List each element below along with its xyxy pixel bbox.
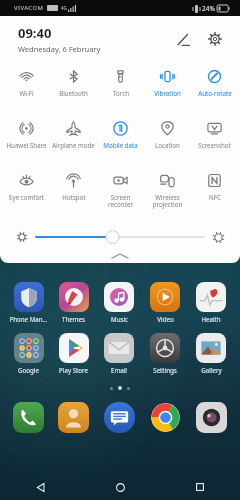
button[interactable]: Wi-Fi	[2, 64, 50, 116]
button[interactable]: Phone Man…	[6, 282, 51, 323]
staticText: 24%	[202, 4, 215, 13]
button[interactable]: Vibration	[144, 64, 191, 116]
staticText: VIVACOM	[14, 4, 44, 12]
staticText: Themes	[62, 315, 85, 323]
button[interactable]: Auto-rotate	[191, 64, 238, 116]
button[interactable]: Mobile data	[97, 116, 144, 168]
staticText: 09:40	[18, 24, 52, 42]
staticText: Video	[157, 315, 174, 323]
staticText: Email	[111, 366, 127, 374]
button[interactable]: chrome	[142, 402, 188, 433]
staticText: Bluetooth	[59, 89, 88, 97]
button[interactable]: Home	[80, 474, 160, 500]
button[interactable]: NFC	[191, 168, 238, 220]
staticText: Huawei Share	[6, 141, 47, 149]
button[interactable]: Huawei Share	[2, 116, 50, 168]
staticText: Settings	[153, 366, 177, 374]
staticText: Airplane mode	[52, 141, 95, 149]
staticText: Torch	[113, 89, 129, 97]
button[interactable]: Raise brightness	[210, 229, 226, 245]
button[interactable]: Back	[0, 474, 80, 500]
staticText: Health	[201, 315, 221, 323]
staticText: Screenshot	[198, 141, 231, 149]
button[interactable]: Screen recorder	[97, 168, 144, 220]
staticText: Vibration	[154, 89, 181, 97]
button[interactable]: Location	[144, 116, 191, 168]
staticText: Wi-Fi	[19, 89, 34, 97]
button[interactable]: Settings	[142, 333, 188, 374]
staticText: Auto-rotate	[198, 89, 232, 97]
button[interactable]: Video	[142, 282, 188, 323]
button[interactable]: Bluetooth	[50, 64, 97, 116]
button[interactable]: dialer	[6, 402, 51, 433]
button[interactable]: messages	[96, 402, 142, 433]
button[interactable]: camera	[188, 402, 234, 433]
button[interactable]: Play Store	[51, 333, 96, 374]
button[interactable]: Themes	[51, 282, 96, 323]
staticText: Hotspot	[62, 193, 86, 201]
staticText: Wednesday, 6 February	[18, 44, 101, 54]
button[interactable]: Edit	[170, 26, 196, 52]
button[interactable]: Eye comfort	[2, 168, 50, 220]
button[interactable]: Wireless projection	[144, 168, 191, 220]
button[interactable]: Torch	[97, 64, 144, 116]
staticText: Screen recorder	[98, 193, 143, 209]
button[interactable]: Music	[96, 282, 142, 323]
button[interactable]: Gallery	[188, 333, 234, 374]
staticText: NFC	[209, 193, 221, 201]
staticText: Eye comfort	[9, 193, 44, 201]
staticText: Music	[111, 315, 128, 323]
button[interactable]	[30, 227, 210, 247]
button[interactable]: Airplane mode	[50, 116, 97, 168]
button[interactable]: Collapse panel	[0, 249, 240, 263]
button[interactable]: contacts	[51, 402, 96, 433]
button[interactable]: Recent apps	[160, 474, 240, 500]
staticText: Mobile data	[103, 141, 138, 149]
staticText: Gallery	[201, 366, 222, 374]
button[interactable]: Lower brightness	[14, 229, 30, 245]
button[interactable]: Email	[96, 333, 142, 374]
button[interactable]: Settings	[202, 26, 228, 52]
staticText: Phone Man…	[9, 315, 48, 323]
staticText: Play Store	[59, 366, 88, 374]
button[interactable]: Health	[188, 282, 234, 323]
staticText: Google	[18, 366, 39, 374]
button[interactable]: Hotspot	[50, 168, 97, 220]
button[interactable]: Google	[6, 333, 51, 374]
button[interactable]: Screenshot	[191, 116, 238, 168]
staticText: 4G	[61, 5, 67, 11]
staticText: Location	[155, 141, 180, 149]
staticText: Wireless projection	[145, 193, 190, 209]
